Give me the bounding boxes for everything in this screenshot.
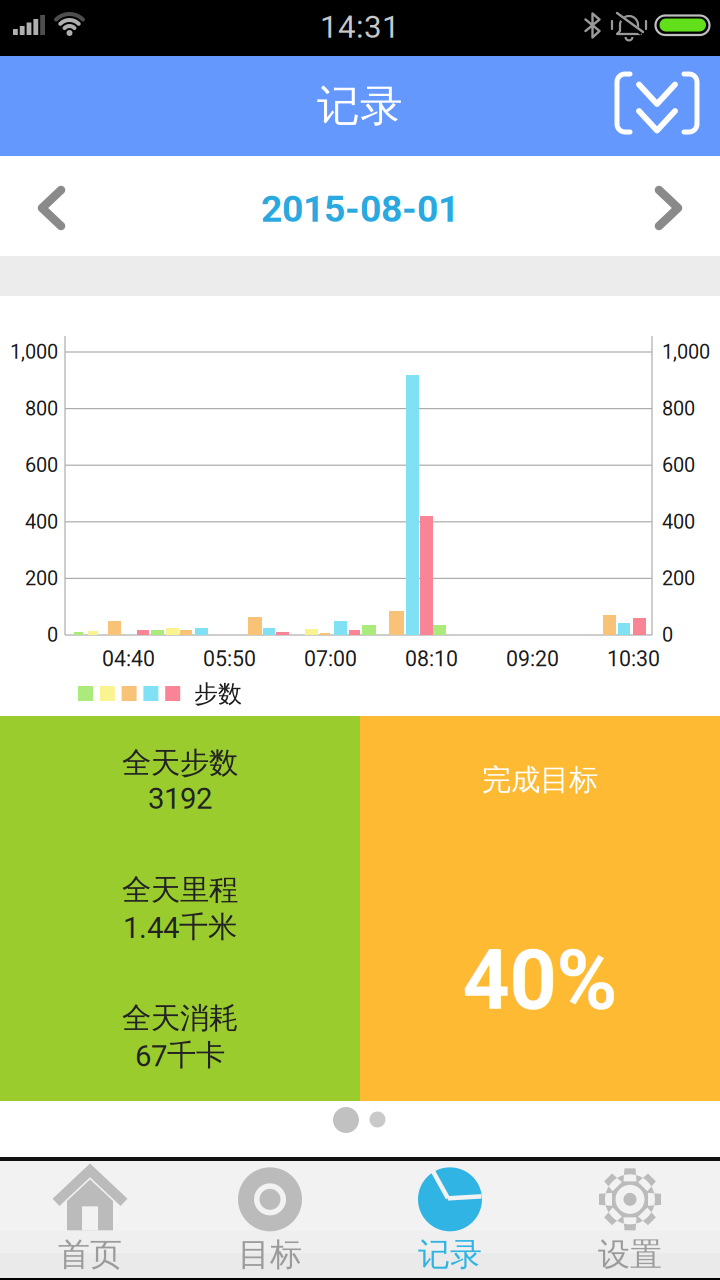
staticText: 首页 [58, 1234, 122, 1275]
staticText: 0 [662, 623, 673, 647]
staticText: 全天里程 [122, 871, 238, 908]
staticText: 1,000 [10, 340, 58, 364]
staticText: 600 [662, 453, 695, 477]
staticText: 记录 [317, 79, 403, 133]
staticText: 10:30 [607, 646, 660, 671]
button[interactable]: 目标 [180, 1161, 360, 1278]
staticText: 09:20 [506, 646, 559, 671]
staticText: 0 [47, 623, 58, 647]
button[interactable]: 首页 [0, 1161, 180, 1278]
staticText: 07:00 [304, 646, 357, 671]
button[interactable] [0, 156, 100, 256]
staticText: 3192 [148, 781, 212, 816]
staticText: 完成目标 [482, 761, 598, 798]
staticText: 05:50 [203, 646, 256, 671]
staticText: 2015-08-01 [261, 187, 459, 231]
staticText: 40% [462, 932, 617, 1029]
staticText: 全天步数 [122, 744, 238, 781]
staticText: 14:31 [320, 9, 400, 45]
staticText: 记录 [418, 1234, 482, 1275]
staticText: 步数 [194, 679, 242, 709]
staticText: 400 [662, 510, 695, 533]
staticText: 200 [662, 567, 695, 590]
staticText: 67千卡 [135, 1037, 225, 1074]
button[interactable] [620, 156, 720, 256]
staticText: 全天消耗 [122, 1000, 238, 1037]
staticText: 1.44千米 [123, 908, 237, 945]
button[interactable]: 记录 [360, 1161, 540, 1278]
staticText: 400 [25, 510, 58, 533]
staticText: 200 [25, 567, 58, 590]
button[interactable]: 设置 [540, 1161, 720, 1278]
staticText: 设置 [598, 1234, 662, 1275]
staticText: 目标 [238, 1234, 302, 1275]
staticText: 800 [25, 397, 58, 420]
staticText: 04:40 [102, 646, 155, 671]
staticText: 1,000 [662, 340, 710, 364]
button[interactable] [604, 56, 716, 156]
staticText: 08:10 [405, 646, 458, 671]
staticText: 600 [25, 453, 58, 477]
staticText: 800 [662, 397, 695, 420]
